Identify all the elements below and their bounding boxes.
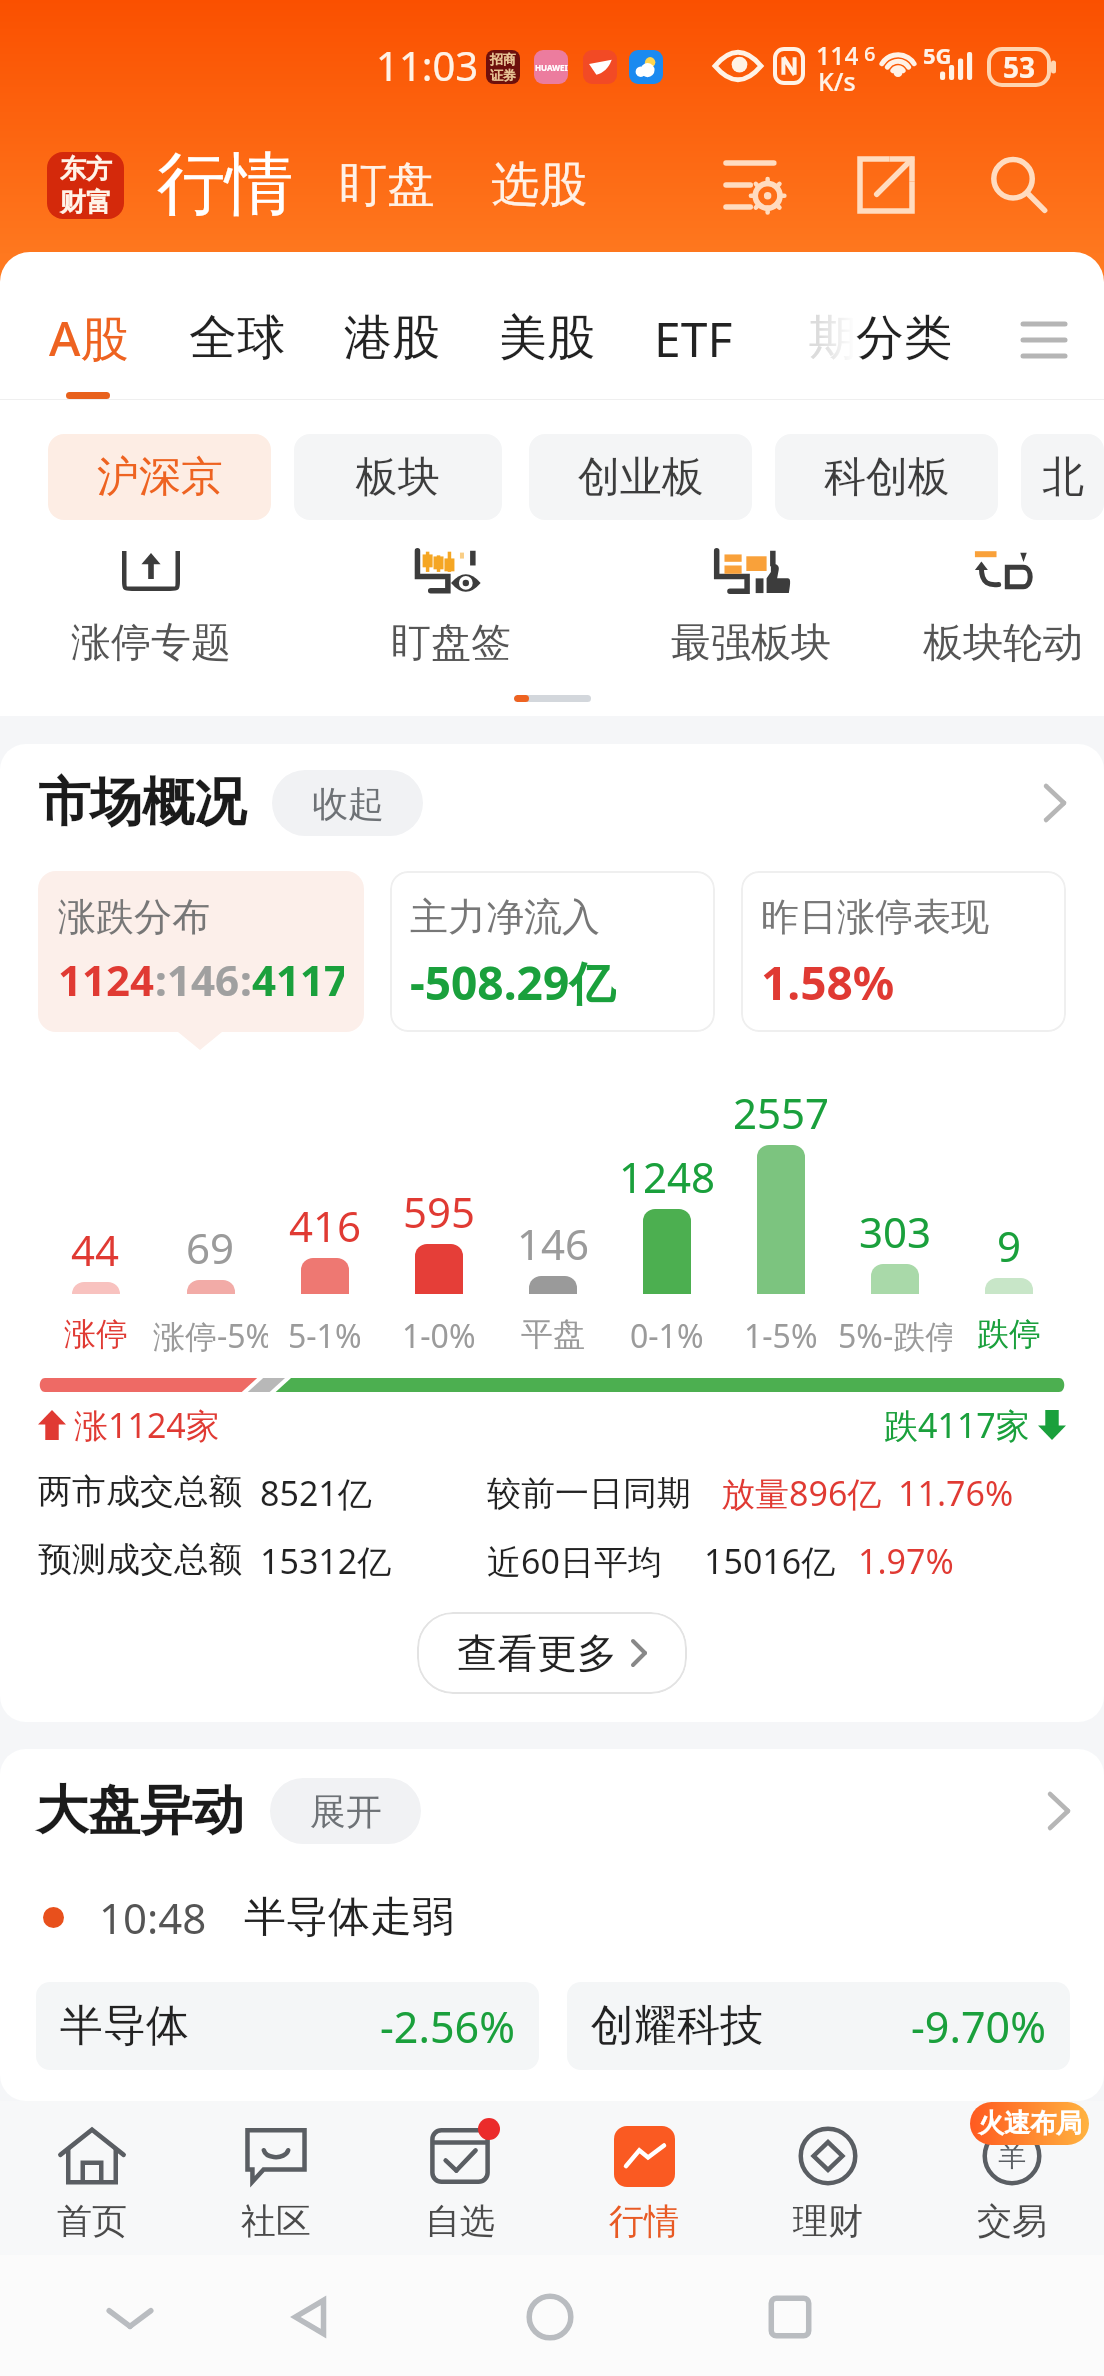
staticText: 火速布局 xyxy=(978,2107,1082,2140)
button[interactable]: 火速布局 xyxy=(970,2102,1089,2145)
button[interactable]: 涨跌分布 xyxy=(38,871,364,1032)
button[interactable]: 半导体 xyxy=(36,1982,539,2070)
button[interactable]: 大盘异动 xyxy=(36,1777,1070,1845)
button[interactable]: 昨日涨停表现 xyxy=(741,871,1066,1032)
staticText: 半导体 xyxy=(60,1999,189,2053)
staticText: 10:48 xyxy=(99,1889,207,1946)
button[interactable]: Share xyxy=(848,147,924,223)
staticText: 理财 xyxy=(793,2199,863,2243)
button[interactable]: 行情 xyxy=(552,2101,736,2255)
staticText: 69 xyxy=(186,1219,235,1276)
staticText: 盯盘签 xyxy=(391,617,511,667)
staticText: A股 xyxy=(49,305,129,371)
button[interactable]: 盯盘签 xyxy=(301,546,601,667)
button[interactable]: 羊 xyxy=(920,2101,1104,2255)
staticText: K/s xyxy=(818,64,856,98)
staticText: : xyxy=(240,951,252,1008)
staticText: 4117 xyxy=(252,951,344,1008)
staticText: 两市成交总额 xyxy=(38,1470,242,1513)
staticText: 放量896亿 xyxy=(721,1470,882,1516)
staticText: 涨停-5% xyxy=(153,1314,268,1358)
button[interactable]: 沪深京 xyxy=(48,434,271,520)
button[interactable]: ETF xyxy=(654,273,809,403)
button[interactable]: 行情 xyxy=(157,142,293,228)
button[interactable]: 选股 xyxy=(491,155,587,215)
button[interactable]: 首页 xyxy=(0,2101,184,2255)
button[interactable]: 涨停专题 xyxy=(1,546,301,667)
button[interactable]: Filter settings xyxy=(716,147,792,223)
staticText: 创耀科技 xyxy=(591,1999,763,2053)
staticText: 1.58% xyxy=(761,951,895,1010)
button[interactable]: Search xyxy=(980,147,1056,223)
staticText: 交易 xyxy=(977,2199,1047,2243)
staticText: 科创板 xyxy=(824,451,950,504)
staticText: 15016亿 xyxy=(704,1538,836,1584)
staticText: 首页 xyxy=(57,2199,127,2243)
button[interactable]: 创业板 xyxy=(529,434,752,520)
staticText: 较前一日同期 xyxy=(487,1472,691,1515)
button[interactable]: 板块轮动 xyxy=(901,546,1104,667)
staticText: 114 xyxy=(816,38,858,72)
staticText: 北 xyxy=(1042,451,1084,504)
staticText: 595 xyxy=(403,1183,476,1240)
staticText: 社区 xyxy=(241,2199,311,2243)
staticText: 涨停专题 xyxy=(71,617,231,667)
button[interactable]: 美股 xyxy=(499,273,654,403)
staticText: 1124 xyxy=(58,951,155,1008)
button[interactable]: A股 xyxy=(34,273,189,403)
staticText: 半导体走弱 xyxy=(244,1891,454,1944)
staticText: -508.29亿 xyxy=(410,951,616,1010)
staticText: 15312亿 xyxy=(260,1538,392,1584)
staticText: 146 xyxy=(167,951,240,1008)
button[interactable]: 东方 xyxy=(47,152,124,219)
staticText: 跌4117家 xyxy=(884,1402,1030,1448)
staticText: 涨停 xyxy=(64,1314,128,1354)
staticText: 近60日平均 xyxy=(487,1538,662,1584)
staticText: 5%-跌停 xyxy=(838,1314,952,1358)
staticText: 涨1124家 xyxy=(74,1402,220,1448)
staticText: 146 xyxy=(517,1215,590,1272)
staticText: 9 xyxy=(997,1217,1022,1274)
button[interactable]: 盯盘 xyxy=(339,155,435,215)
button[interactable]: 社区 xyxy=(184,2101,368,2255)
button[interactable]: 创耀科技 xyxy=(567,1982,1070,2070)
button[interactable]: 港股 xyxy=(344,273,499,403)
button[interactable]: 查看更多 xyxy=(417,1612,687,1694)
staticText: 1.97% xyxy=(858,1538,954,1584)
staticText: 证券 xyxy=(490,67,516,83)
staticText: 市场概况 xyxy=(38,770,246,836)
staticText: 5-1% xyxy=(288,1314,362,1358)
staticText: 6 xyxy=(864,40,876,67)
staticText: 11:03 xyxy=(376,38,479,92)
button[interactable]: 主力净流入 xyxy=(390,871,715,1032)
staticText: 收起 xyxy=(312,781,384,826)
button[interactable]: 理财 xyxy=(736,2101,920,2255)
button[interactable]: 自选 xyxy=(368,2101,552,2255)
button[interactable]: 分类 xyxy=(856,273,952,403)
button[interactable]: Back xyxy=(284,2291,336,2343)
staticText: 2557 xyxy=(733,1084,830,1141)
button[interactable]: 科创板 xyxy=(775,434,998,520)
button[interactable]: 市场概况 xyxy=(38,769,1066,837)
button[interactable]: 最强板块 xyxy=(601,546,901,667)
staticText: 分类 xyxy=(856,308,952,368)
staticText: 416 xyxy=(289,1197,362,1254)
button[interactable]: 期 xyxy=(809,273,857,403)
staticText: 羊 xyxy=(998,2139,1026,2174)
button[interactable]: 全球 xyxy=(189,273,344,403)
staticText: 东方 xyxy=(60,153,112,186)
staticText: -2.56% xyxy=(380,1997,515,2056)
staticText: 港股 xyxy=(344,308,440,368)
button[interactable]: 北 xyxy=(1021,434,1104,520)
button[interactable]: Hide keyboard xyxy=(104,2291,156,2343)
button[interactable]: Home xyxy=(524,2291,576,2343)
staticText: 预测成交总额 xyxy=(38,1538,242,1581)
staticText: 展开 xyxy=(310,1789,382,1834)
staticText: 1-5% xyxy=(744,1314,818,1358)
staticText: 自选 xyxy=(425,2199,495,2243)
button[interactable]: More categories xyxy=(1014,308,1074,368)
button[interactable]: 板块 xyxy=(294,434,502,520)
staticText: 11.76% xyxy=(898,1470,1014,1516)
button[interactable]: Recent apps xyxy=(764,2291,816,2343)
staticText: 0-1% xyxy=(630,1314,704,1358)
